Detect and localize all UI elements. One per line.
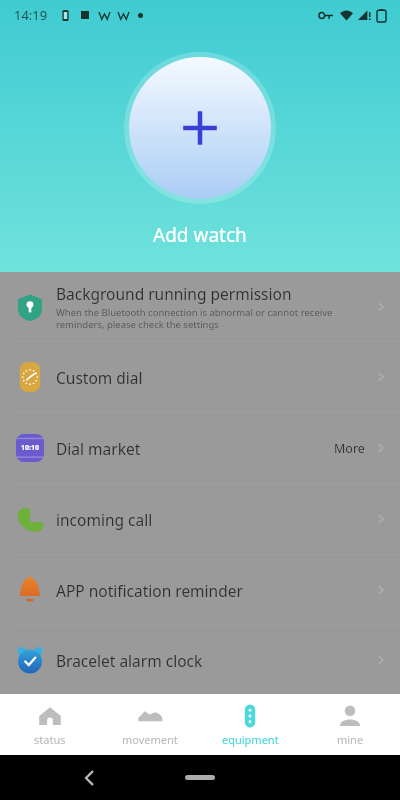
staticText: Bracelet alarm clock [56, 650, 203, 671]
button[interactable]: movement [100, 694, 200, 755]
button[interactable]: APP notification reminder [0, 555, 400, 625]
staticText: equipment [222, 732, 279, 747]
staticText: Background running permission [56, 283, 292, 304]
staticText: 14:19 [14, 6, 48, 24]
button[interactable]: 10:10 [0, 413, 400, 483]
button[interactable]: equipment [200, 694, 300, 755]
staticText: Add watch [153, 222, 247, 248]
button[interactable]: status [0, 694, 100, 755]
button[interactable]: Home [185, 775, 215, 780]
staticText: Dial market [56, 438, 141, 459]
staticText: movement [122, 732, 178, 747]
button[interactable]: Back [80, 768, 100, 788]
button[interactable]: Bracelet alarm clock [0, 626, 400, 694]
button[interactable]: mine [300, 694, 400, 755]
staticText: When the Bluetooth connection is abnorma… [56, 306, 333, 331]
staticText: More [334, 440, 365, 457]
staticText: mine [337, 732, 364, 747]
button[interactable]: Add watch [129, 57, 271, 199]
staticText: Custom dial [56, 367, 143, 388]
button[interactable]: incoming call [0, 484, 400, 554]
staticText: 10:10 [21, 443, 39, 453]
staticText: incoming call [56, 509, 153, 530]
staticText: status [34, 732, 66, 747]
staticText: APP notification reminder [56, 580, 243, 601]
button[interactable]: Custom dial [0, 342, 400, 412]
button[interactable]: Background running permission [0, 272, 400, 341]
